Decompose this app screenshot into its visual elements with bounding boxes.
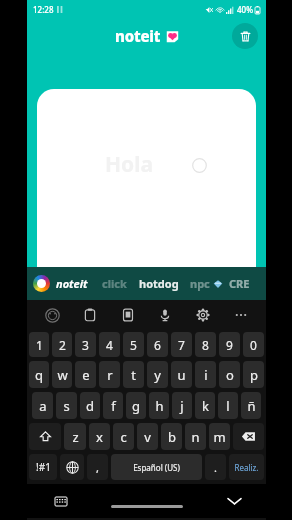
- staticText: s: [63, 397, 70, 415]
- button[interactable]: i: [195, 361, 216, 388]
- button[interactable]: v: [137, 423, 158, 450]
- button[interactable]: 1: [29, 332, 49, 357]
- button[interactable]: Emoji: [39, 302, 65, 328]
- staticText: g: [132, 397, 140, 415]
- button[interactable]: CRE: [229, 276, 250, 291]
- staticText: t: [131, 366, 136, 384]
- staticText: w: [57, 366, 68, 384]
- button[interactable]: 2: [52, 332, 72, 357]
- button[interactable]: click: [102, 276, 127, 291]
- button[interactable]: Hola: [37, 89, 256, 267]
- button[interactable]: Delete note: [232, 23, 258, 49]
- button[interactable]: Shift: [29, 423, 61, 450]
- button[interactable]: f: [103, 392, 123, 419]
- staticText: 1: [36, 337, 43, 353]
- staticText: Realiz.: [234, 462, 259, 473]
- staticText: k: [202, 397, 209, 415]
- button[interactable]: 3: [75, 332, 96, 357]
- staticText: e: [82, 366, 90, 384]
- button[interactable]: j: [172, 392, 192, 419]
- staticText: 7: [178, 337, 185, 353]
- staticText: 6: [154, 337, 161, 353]
- staticText: j: [180, 397, 184, 415]
- button[interactable]: t: [123, 361, 144, 388]
- staticText: f: [111, 397, 116, 415]
- staticText: n: [191, 428, 200, 446]
- button[interactable]: e: [75, 361, 96, 388]
- button[interactable]: !#1: [29, 454, 57, 480]
- button[interactable]: 0: [243, 332, 264, 357]
- staticText: 12:28: [33, 4, 54, 15]
- button[interactable]: Hide keyboard: [51, 491, 71, 511]
- button[interactable]: Clipboard: [77, 302, 103, 328]
- staticText: 2: [59, 337, 66, 353]
- button[interactable]: y: [147, 361, 168, 388]
- button[interactable]: h: [149, 392, 169, 419]
- staticText: !#1: [36, 460, 51, 474]
- button[interactable]: g: [126, 392, 146, 419]
- button[interactable]: 9: [219, 332, 240, 357]
- staticText: z: [72, 428, 79, 446]
- button[interactable]: n: [185, 423, 206, 450]
- staticText: 3: [82, 337, 89, 353]
- button[interactable]: m: [209, 423, 230, 450]
- staticText: v: [144, 428, 151, 446]
- button[interactable]: .: [205, 454, 226, 480]
- button[interactable]: d: [80, 392, 100, 419]
- button[interactable]: Voice input: [152, 302, 178, 328]
- staticText: 9: [226, 337, 233, 353]
- button[interactable]: c: [113, 423, 134, 450]
- button[interactable]: Stickers: [115, 302, 141, 328]
- button[interactable]: 8: [195, 332, 216, 357]
- staticText: ñ: [247, 397, 256, 415]
- staticText: h: [155, 397, 164, 415]
- button[interactable]: o: [219, 361, 240, 388]
- button[interactable]: p: [243, 361, 264, 388]
- button[interactable]: npc: [190, 276, 210, 291]
- button[interactable]: w: [52, 361, 72, 388]
- staticText: c: [120, 428, 127, 446]
- staticText: d: [86, 397, 94, 415]
- button[interactable]: noteit app: [33, 275, 50, 292]
- button[interactable]: Español (US): [111, 454, 202, 480]
- button[interactable]: 4: [99, 332, 120, 357]
- button[interactable]: 6: [147, 332, 168, 357]
- button[interactable]: ,: [87, 454, 108, 480]
- button[interactable]: q: [29, 361, 49, 388]
- staticText: q: [35, 366, 43, 384]
- button[interactable]: More options: [228, 302, 254, 328]
- button[interactable]: u: [171, 361, 192, 388]
- button[interactable]: x: [89, 423, 110, 450]
- button[interactable]: k: [195, 392, 215, 419]
- staticText: 0: [250, 337, 257, 353]
- button[interactable]: Settings: [190, 302, 216, 328]
- staticText: Español (US): [133, 462, 180, 473]
- button[interactable]: Realiz.: [229, 454, 264, 480]
- staticText: ,: [96, 460, 99, 475]
- button[interactable]: Backspace: [233, 423, 264, 450]
- button[interactable]: 7: [171, 332, 192, 357]
- button[interactable]: r: [99, 361, 120, 388]
- button[interactable]: s: [56, 392, 77, 419]
- staticText: l: [226, 397, 230, 415]
- button[interactable]: Back: [224, 491, 244, 511]
- button[interactable]: hotdog: [139, 276, 179, 291]
- button[interactable]: Change language: [60, 454, 84, 480]
- button[interactable]: 5: [123, 332, 144, 357]
- staticText: y: [154, 366, 161, 384]
- staticText: 40%: [237, 4, 253, 15]
- staticText: b: [168, 428, 176, 446]
- button[interactable]: l: [218, 392, 238, 419]
- staticText: noteit: [115, 26, 161, 46]
- staticText: i: [204, 366, 208, 384]
- staticText: p: [250, 366, 258, 384]
- staticText: r: [107, 366, 113, 384]
- staticText: 5: [130, 337, 137, 353]
- button[interactable]: z: [64, 423, 86, 450]
- button[interactable]: a: [32, 392, 53, 419]
- staticText: x: [96, 428, 103, 446]
- button[interactable]: noteit: [56, 276, 88, 291]
- button[interactable]: b: [161, 423, 182, 450]
- button[interactable]: ñ: [241, 392, 261, 419]
- button[interactable]: Home: [111, 505, 183, 508]
